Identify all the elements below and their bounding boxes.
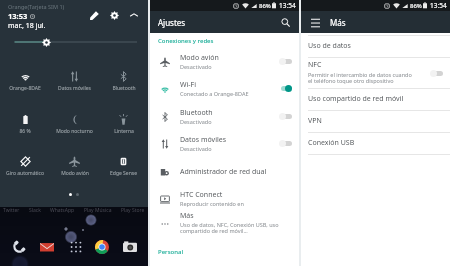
staticText: Más bbox=[330, 17, 346, 28]
staticText: mar., 18 jul. bbox=[8, 21, 46, 31]
button[interactable]: Administrador de red dual bbox=[150, 163, 299, 180]
staticText: Conectado a Orange-8DAE bbox=[180, 90, 249, 97]
button[interactable]: chrome bbox=[93, 238, 110, 255]
button[interactable]: Datos móviles bbox=[50, 70, 99, 94]
staticText: Modo avión bbox=[180, 53, 219, 63]
staticText: Conexiones y redes bbox=[158, 37, 214, 45]
staticText: Play Música bbox=[84, 207, 112, 214]
button[interactable]: Brillo bbox=[42, 38, 51, 47]
staticText: Datos móviles bbox=[180, 135, 227, 145]
staticText: Linterna bbox=[114, 128, 134, 135]
staticText: Orange-8DAE bbox=[9, 85, 41, 92]
button[interactable]: Bluetooth bbox=[150, 104, 299, 128]
button[interactable]: Editar bbox=[85, 6, 103, 24]
staticText: Modo nocturno bbox=[56, 128, 93, 135]
staticText: Desactivado bbox=[180, 118, 212, 125]
button[interactable]: Conexión USB bbox=[301, 132, 450, 154]
staticText: Slack bbox=[29, 207, 41, 214]
button[interactable]: Ajustes bbox=[105, 6, 123, 24]
button[interactable]: Buscar bbox=[277, 14, 293, 30]
staticText: Modo avión bbox=[61, 170, 89, 177]
button[interactable] bbox=[430, 69, 443, 77]
staticText: Play Store bbox=[121, 207, 145, 214]
staticText: Personal bbox=[158, 248, 184, 256]
staticText: Uso compartido de red móvil bbox=[308, 94, 404, 104]
staticText: Bluetooth bbox=[112, 85, 136, 92]
staticText: 13:54 bbox=[430, 1, 447, 10]
button[interactable]: phone bbox=[11, 238, 28, 255]
button[interactable] bbox=[279, 57, 292, 65]
button[interactable]: Más bbox=[150, 211, 299, 235]
button[interactable]: Contraer bbox=[125, 6, 143, 24]
button[interactable]: mail bbox=[38, 238, 55, 255]
staticText: Permitir el intercambio de datos cuando … bbox=[308, 71, 412, 85]
staticText: Conexión USB bbox=[308, 138, 355, 148]
staticText: Desactivado bbox=[180, 145, 212, 152]
staticText: 13:54 bbox=[279, 1, 296, 10]
staticText: Datos móviles bbox=[58, 85, 91, 92]
staticText: NFC bbox=[308, 60, 322, 70]
button[interactable]: Wi-Fi bbox=[150, 76, 299, 100]
staticText: Más bbox=[180, 211, 194, 221]
button[interactable]: Modo nocturno bbox=[50, 113, 99, 137]
staticText: Reproducir contenido en bbox=[180, 200, 244, 207]
staticText: WhatsApp bbox=[50, 207, 75, 214]
button[interactable]: Modo avión bbox=[50, 155, 99, 179]
staticText: Administrador de red dual bbox=[180, 167, 267, 177]
staticText: HTC Connect bbox=[180, 190, 223, 200]
staticText: VPN bbox=[308, 116, 322, 126]
button[interactable]: Uso de datos bbox=[301, 35, 450, 57]
button[interactable]: 86 % bbox=[0, 113, 50, 137]
button[interactable]: Datos móviles bbox=[150, 131, 299, 155]
button[interactable] bbox=[279, 139, 292, 147]
button[interactable]: Bluetooth bbox=[99, 70, 148, 94]
staticText: 86 % bbox=[19, 128, 31, 135]
staticText: Giro automático bbox=[6, 170, 44, 177]
button[interactable]: Linterna bbox=[99, 113, 148, 137]
button[interactable]: Edge Sense bbox=[99, 155, 148, 179]
button[interactable]: Giro automático bbox=[0, 155, 50, 179]
staticText: Wi-Fi bbox=[180, 80, 197, 90]
button[interactable]: Orange-8DAE bbox=[0, 70, 50, 94]
staticText: 13:53 bbox=[8, 11, 28, 21]
button[interactable]: NFC bbox=[301, 57, 450, 88]
button[interactable]: Menú bbox=[308, 15, 322, 29]
button[interactable]: drawer bbox=[67, 238, 84, 255]
staticText: Uso de datos bbox=[308, 41, 351, 51]
staticText: 86% bbox=[259, 2, 271, 10]
staticText: Desactivado bbox=[180, 63, 212, 70]
staticText: Ajustes bbox=[158, 17, 186, 28]
staticText: Orange(Tarjeta SIM 1) bbox=[8, 3, 65, 10]
staticText: Uso de datos, NFC, Conexión USB, uso com… bbox=[180, 221, 292, 235]
staticText: Bluetooth bbox=[180, 108, 213, 118]
button[interactable]: VPN bbox=[301, 110, 450, 132]
button[interactable] bbox=[279, 84, 292, 92]
staticText: Edge Sense bbox=[110, 170, 137, 177]
button[interactable]: Modo avión bbox=[150, 49, 299, 73]
button[interactable]: Uso compartido de red móvil bbox=[301, 88, 450, 110]
button[interactable]: camera bbox=[121, 238, 138, 255]
staticText: Twitter bbox=[3, 207, 20, 214]
staticText: 86% bbox=[410, 2, 422, 10]
button[interactable]: HTC Connect bbox=[150, 186, 299, 210]
button[interactable] bbox=[279, 112, 292, 120]
